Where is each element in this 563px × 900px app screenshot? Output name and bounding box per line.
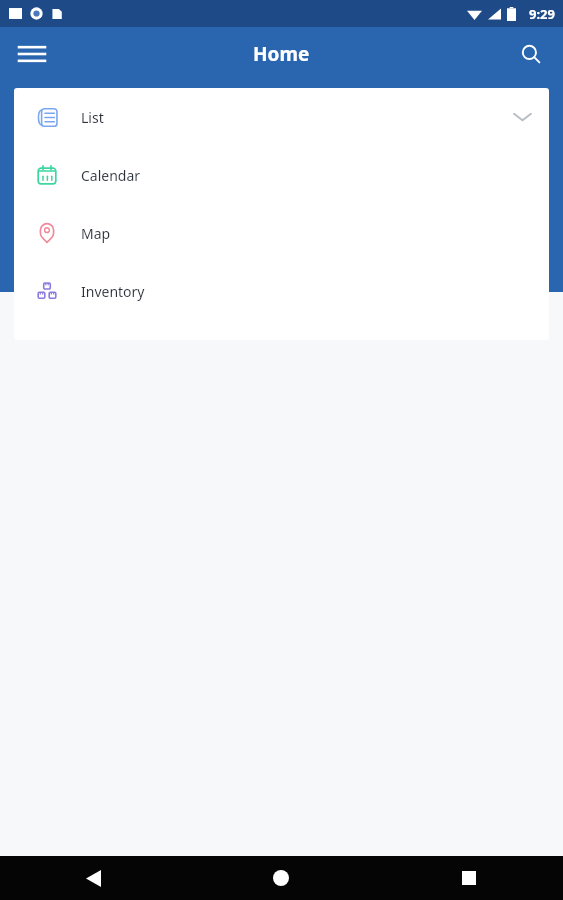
button[interactable]: Open navigation menu	[8, 30, 56, 78]
staticText: 9:29	[529, 5, 555, 23]
staticText: Map	[81, 224, 111, 243]
button[interactable]: Inventory	[14, 262, 549, 320]
staticText: Calendar	[81, 166, 141, 185]
button[interactable]: Map	[14, 204, 549, 262]
button[interactable]: Calendar	[14, 146, 549, 204]
staticText: List	[81, 108, 104, 127]
button[interactable]: List	[14, 88, 549, 146]
staticText: Inventory	[81, 282, 145, 301]
button[interactable]: Home	[187, 856, 375, 900]
button[interactable]: Back	[0, 856, 187, 900]
button[interactable]: Search	[509, 32, 553, 76]
button[interactable]: Recent apps	[375, 856, 563, 900]
staticText: Home	[253, 41, 310, 67]
